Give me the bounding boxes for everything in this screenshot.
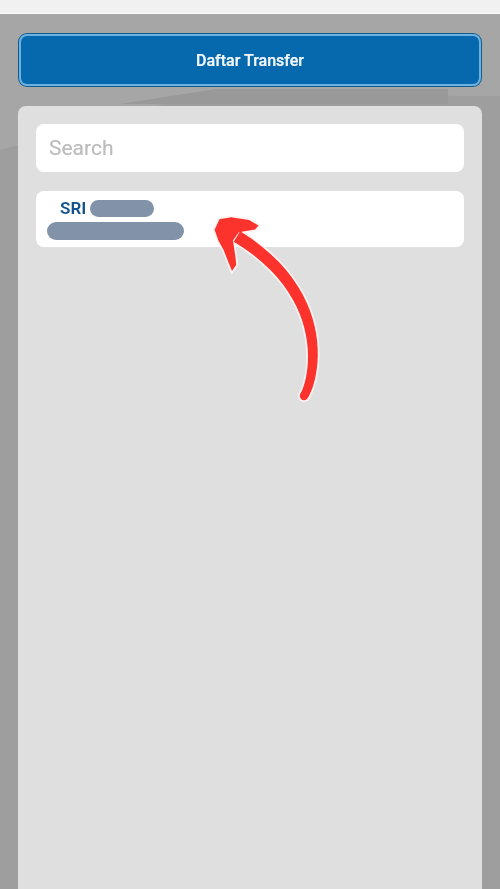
staticText: SRI bbox=[60, 198, 87, 218]
button[interactable]: Search bbox=[36, 124, 464, 172]
button[interactable]: Daftar Transfer bbox=[21, 36, 479, 84]
staticText: Search bbox=[49, 136, 114, 161]
button[interactable]: SRI bbox=[36, 191, 464, 247]
staticText: Daftar Transfer bbox=[196, 51, 304, 70]
